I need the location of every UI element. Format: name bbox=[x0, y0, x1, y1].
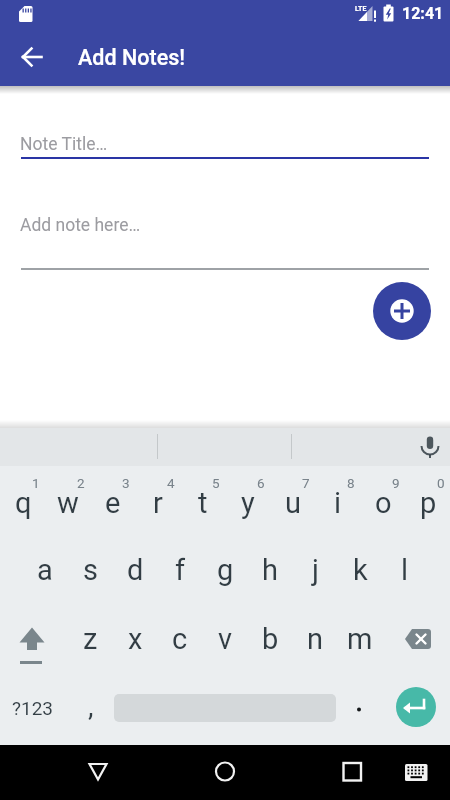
button[interactable] bbox=[76, 750, 120, 794]
button[interactable]: g bbox=[203, 546, 247, 594]
staticText: a bbox=[37, 553, 53, 587]
button[interactable]: f bbox=[158, 546, 202, 594]
staticText: h bbox=[262, 553, 278, 587]
staticText: ?123 bbox=[12, 697, 54, 719]
button[interactable]: p bbox=[406, 479, 450, 527]
staticText: g bbox=[217, 553, 234, 587]
staticText: k bbox=[353, 553, 368, 587]
staticText: l bbox=[401, 553, 409, 587]
staticText: d bbox=[127, 553, 144, 587]
staticText: 4 bbox=[167, 475, 175, 491]
staticText: 9 bbox=[392, 475, 400, 491]
staticText: v bbox=[218, 622, 233, 656]
button[interactable]: s bbox=[68, 546, 112, 594]
button[interactable]: u bbox=[271, 479, 315, 527]
button[interactable]: x bbox=[113, 615, 157, 663]
button[interactable]: , bbox=[69, 682, 113, 730]
button[interactable] bbox=[373, 282, 431, 340]
button[interactable]: b bbox=[248, 615, 292, 663]
button[interactable]: n bbox=[293, 615, 337, 663]
staticText: e bbox=[105, 486, 121, 520]
staticText: c bbox=[172, 622, 188, 656]
button[interactable]: t bbox=[181, 479, 225, 527]
staticText: n bbox=[307, 622, 324, 656]
button[interactable]: r bbox=[136, 479, 180, 527]
button[interactable]: l bbox=[383, 546, 427, 594]
staticText: f bbox=[175, 553, 186, 587]
staticText: z bbox=[83, 622, 98, 656]
staticText: Add Notes! bbox=[78, 45, 186, 70]
staticText: 8 bbox=[347, 475, 355, 491]
staticText: y bbox=[241, 486, 255, 520]
staticText: u bbox=[285, 486, 301, 520]
staticText: LTE bbox=[355, 5, 367, 13]
button[interactable] bbox=[412, 428, 448, 464]
button[interactable]: a bbox=[23, 546, 67, 594]
staticText: 0 bbox=[437, 475, 445, 491]
staticText: s bbox=[83, 553, 98, 587]
staticText: 2 bbox=[77, 475, 85, 491]
staticText: Add note here… bbox=[20, 215, 141, 236]
staticText: m bbox=[347, 622, 373, 656]
button[interactable]: m bbox=[338, 615, 382, 663]
button[interactable]: w bbox=[46, 479, 90, 527]
staticText: x bbox=[128, 622, 143, 656]
button[interactable] bbox=[396, 752, 436, 792]
staticText: i bbox=[334, 486, 342, 520]
staticText: 3 bbox=[122, 475, 130, 491]
button[interactable] bbox=[330, 750, 374, 794]
staticText: j bbox=[312, 553, 319, 587]
staticText: w bbox=[57, 486, 79, 520]
staticText: 12:41 bbox=[402, 4, 444, 23]
button[interactable]: y bbox=[226, 479, 270, 527]
button[interactable]: i bbox=[316, 479, 360, 527]
staticText: o bbox=[375, 486, 392, 520]
button[interactable]: e bbox=[91, 479, 135, 527]
staticText: 6 bbox=[257, 475, 265, 491]
button[interactable] bbox=[339, 686, 379, 730]
staticText: 5 bbox=[212, 475, 220, 491]
staticText: q bbox=[15, 486, 32, 520]
button[interactable]: d bbox=[113, 546, 157, 594]
button[interactable] bbox=[392, 613, 448, 665]
staticText: t bbox=[198, 486, 208, 520]
staticText: 7 bbox=[302, 475, 310, 491]
staticText: p bbox=[420, 486, 437, 520]
button[interactable] bbox=[4, 613, 60, 665]
button[interactable]: z bbox=[68, 615, 112, 663]
staticText: b bbox=[262, 622, 279, 656]
staticText: 1 bbox=[32, 475, 40, 491]
button[interactable]: k bbox=[338, 546, 382, 594]
button[interactable]: h bbox=[248, 546, 292, 594]
button[interactable]: o bbox=[361, 479, 405, 527]
staticText: Note Title… bbox=[20, 134, 108, 155]
button[interactable]: c bbox=[158, 615, 202, 663]
button[interactable]: j bbox=[293, 546, 337, 594]
button[interactable] bbox=[396, 687, 436, 727]
button[interactable] bbox=[12, 37, 52, 77]
staticText: , bbox=[88, 690, 94, 723]
button[interactable] bbox=[203, 750, 247, 794]
staticText: r bbox=[153, 486, 163, 520]
button[interactable]: v bbox=[203, 615, 247, 663]
button[interactable]: q bbox=[1, 479, 45, 527]
button[interactable]: ?123 bbox=[2, 684, 64, 732]
